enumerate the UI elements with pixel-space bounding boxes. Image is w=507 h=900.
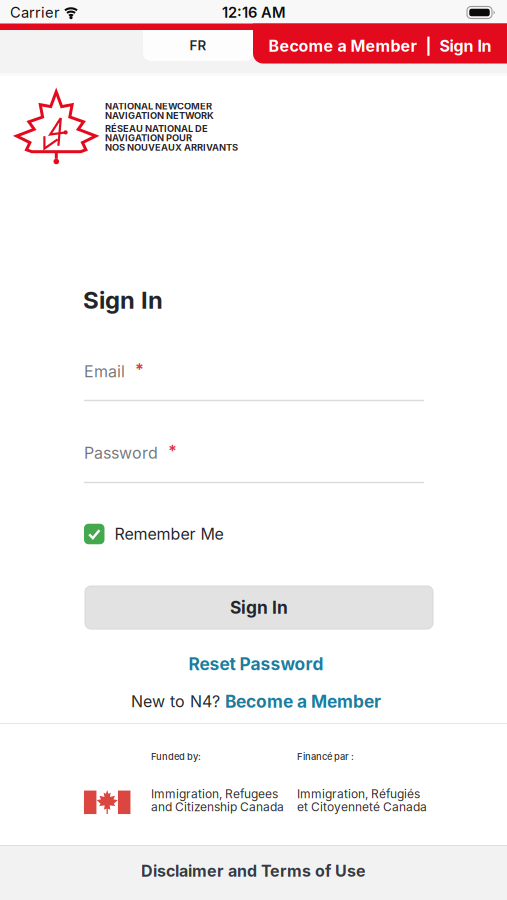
- staticText: NOS NOUVEAUX ARRIVANTS: [105, 142, 238, 153]
- button[interactable]: Reset Password: [188, 654, 323, 674]
- staticText: Sign In: [230, 597, 288, 618]
- staticText: RÉSEAU NATIONAL DE: [105, 123, 208, 134]
- button[interactable]: Remember Me: [84, 524, 428, 544]
- staticText: Immigration, Refugees: [151, 787, 278, 801]
- staticText: NATIONAL NEWCOMER: [105, 101, 212, 112]
- staticText: Carrier: [10, 4, 60, 21]
- button[interactable]: Français: [143, 30, 253, 61]
- staticText: Sign In: [83, 286, 163, 314]
- button[interactable]: Sign In: [85, 586, 433, 629]
- button[interactable]: Disclaimer and Terms of Use: [141, 862, 366, 880]
- staticText: *: [168, 442, 177, 460]
- staticText: Remember Me: [114, 525, 223, 543]
- staticText: Funded by:: [151, 751, 201, 762]
- staticText: Become a Member: [225, 691, 381, 712]
- staticText: Disclaimer and Terms of Use: [141, 862, 366, 880]
- staticText: NAVIGATION NETWORK: [105, 110, 214, 121]
- button[interactable]: Become a Member | Sign In: [253, 23, 507, 63]
- staticText: Password: [84, 444, 158, 462]
- staticText: *: [135, 360, 144, 379]
- staticText: 12:16 AM: [222, 4, 286, 21]
- staticText: Financé par :: [297, 751, 354, 762]
- staticText: and Citizenship Canada: [151, 800, 284, 814]
- staticText: Email: [84, 362, 125, 381]
- staticText: New to N4?: [131, 692, 220, 711]
- staticText: Become a Member | Sign In: [268, 37, 491, 55]
- staticText: FR: [189, 38, 206, 53]
- button[interactable]: Become a Member: [225, 691, 381, 712]
- staticText: Reset Password: [188, 654, 323, 674]
- staticText: NAVIGATION POUR: [105, 132, 192, 143]
- staticText: et Citoyenneté Canada: [297, 800, 427, 814]
- staticText: Immigration, Réfugiés: [297, 787, 420, 801]
